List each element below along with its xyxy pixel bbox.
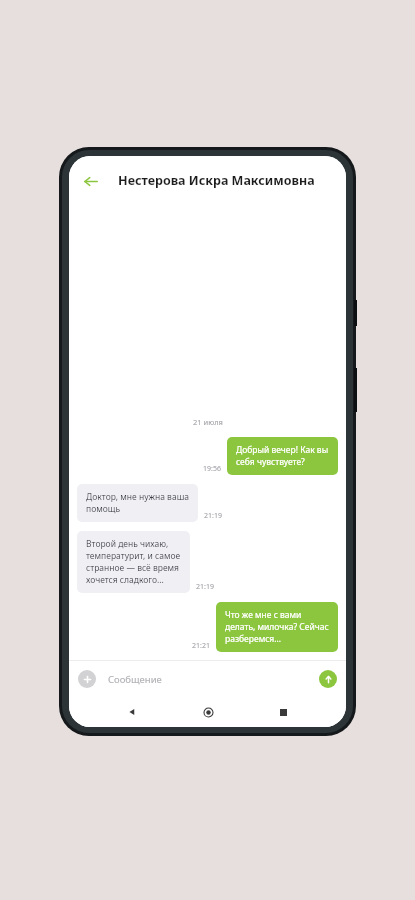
- staticText: Что же мне с вами делать, милочка? Сейча…: [225, 609, 329, 645]
- button[interactable]: Доктор, мне нужна ваша помощь: [77, 484, 198, 522]
- staticText: 21:19: [196, 582, 214, 592]
- button[interactable]: Back: [75, 166, 105, 196]
- staticText: Добрый вечер! Как вы себя чувствуете?: [236, 444, 329, 468]
- staticText: 21 июля: [193, 417, 223, 427]
- staticText: Доктор, мне нужна ваша помощь: [86, 491, 189, 515]
- staticText: 21:21: [192, 641, 210, 651]
- staticText: 21:19: [204, 511, 222, 521]
- button[interactable]: Что же мне с вами делать, милочка? Сейча…: [216, 602, 338, 652]
- button[interactable]: Home: [196, 700, 220, 724]
- button[interactable]: Второй день чихаю, температурит, и самое…: [77, 531, 190, 593]
- staticText: Нестерова Искра Максимовна: [118, 172, 315, 189]
- staticText: Сообщение: [108, 673, 162, 686]
- button[interactable]: Recent apps: [271, 700, 295, 724]
- button[interactable]: Back: [120, 700, 144, 724]
- button[interactable]: Attach: [78, 670, 96, 688]
- button[interactable]: Сообщение: [108, 673, 311, 686]
- button[interactable]: Send: [319, 670, 337, 688]
- staticText: 19:56: [203, 464, 221, 474]
- staticText: Второй день чихаю, температурит, и самое…: [86, 538, 181, 586]
- button[interactable]: Добрый вечер! Как вы себя чувствуете?: [227, 437, 338, 475]
